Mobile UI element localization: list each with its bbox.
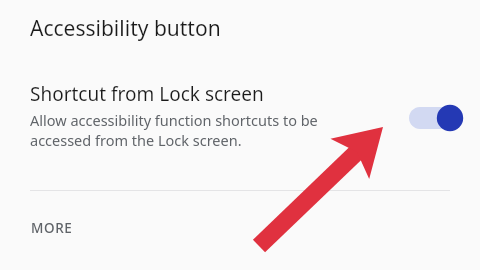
staticText: MORE — [31, 219, 73, 237]
button[interactable]: Shortcut from Lock screen toggle, on — [403, 102, 467, 134]
button[interactable]: Shortcut from Lock screen — [0, 72, 480, 164]
staticText: Accessibility button — [30, 14, 221, 43]
staticText: Shortcut from Lock screen — [30, 81, 264, 107]
button[interactable]: MORE — [18, 210, 138, 246]
staticText: Allow accessibility function shortcuts t… — [30, 110, 318, 150]
